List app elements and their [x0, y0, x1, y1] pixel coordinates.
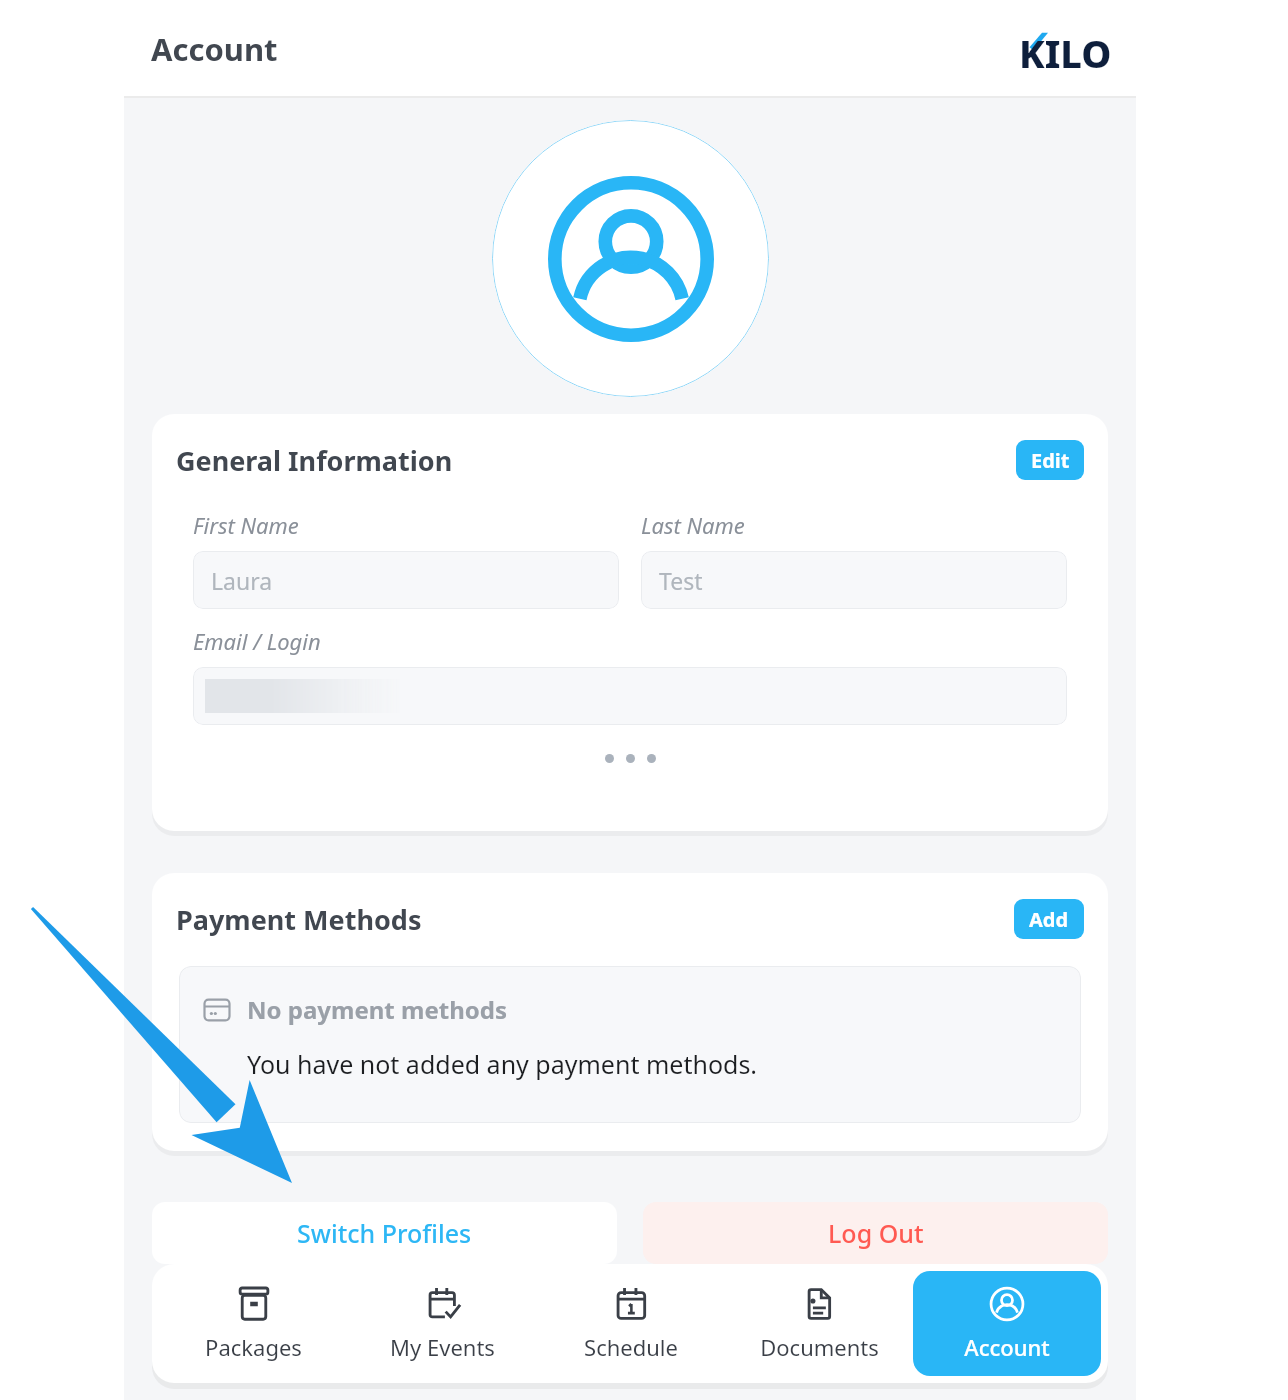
- button[interactable]: Documents: [725, 1271, 913, 1376]
- button[interactable]: [193, 667, 1067, 725]
- button[interactable]: My Events: [348, 1271, 537, 1376]
- staticText: Last Name: [641, 510, 745, 540]
- staticText: Edit: [1031, 447, 1070, 474]
- staticText: KILO: [1019, 27, 1112, 75]
- button[interactable]: Account: [913, 1271, 1101, 1376]
- button[interactable]: Add: [1014, 899, 1084, 939]
- staticText: Account: [964, 1332, 1050, 1362]
- staticText: Email / Login: [193, 626, 321, 656]
- staticText: Packages: [205, 1332, 302, 1362]
- staticText: My Events: [390, 1332, 495, 1362]
- button[interactable]: Packages: [159, 1271, 348, 1376]
- staticText: First Name: [193, 510, 299, 540]
- staticText: General Information: [176, 442, 453, 479]
- staticText: Add: [1029, 906, 1069, 933]
- button[interactable]: Switch Profiles: [152, 1202, 617, 1264]
- staticText: Test: [659, 565, 703, 596]
- button[interactable]: Log Out: [643, 1202, 1108, 1264]
- staticText: Log Out: [828, 1216, 924, 1250]
- button[interactable]: Laura: [193, 551, 619, 609]
- button[interactable]: Schedule: [537, 1271, 725, 1376]
- staticText: No payment methods: [247, 993, 507, 1026]
- button[interactable]: Edit: [1016, 440, 1084, 480]
- button[interactable]: Test: [641, 551, 1067, 609]
- staticText: You have not added any payment methods.: [247, 1047, 758, 1081]
- staticText: Laura: [211, 565, 273, 596]
- staticText: Documents: [760, 1332, 879, 1362]
- staticText: Payment Methods: [176, 901, 422, 938]
- staticText: Switch Profiles: [297, 1216, 472, 1250]
- staticText: Schedule: [584, 1332, 678, 1362]
- staticText: Account: [151, 28, 278, 70]
